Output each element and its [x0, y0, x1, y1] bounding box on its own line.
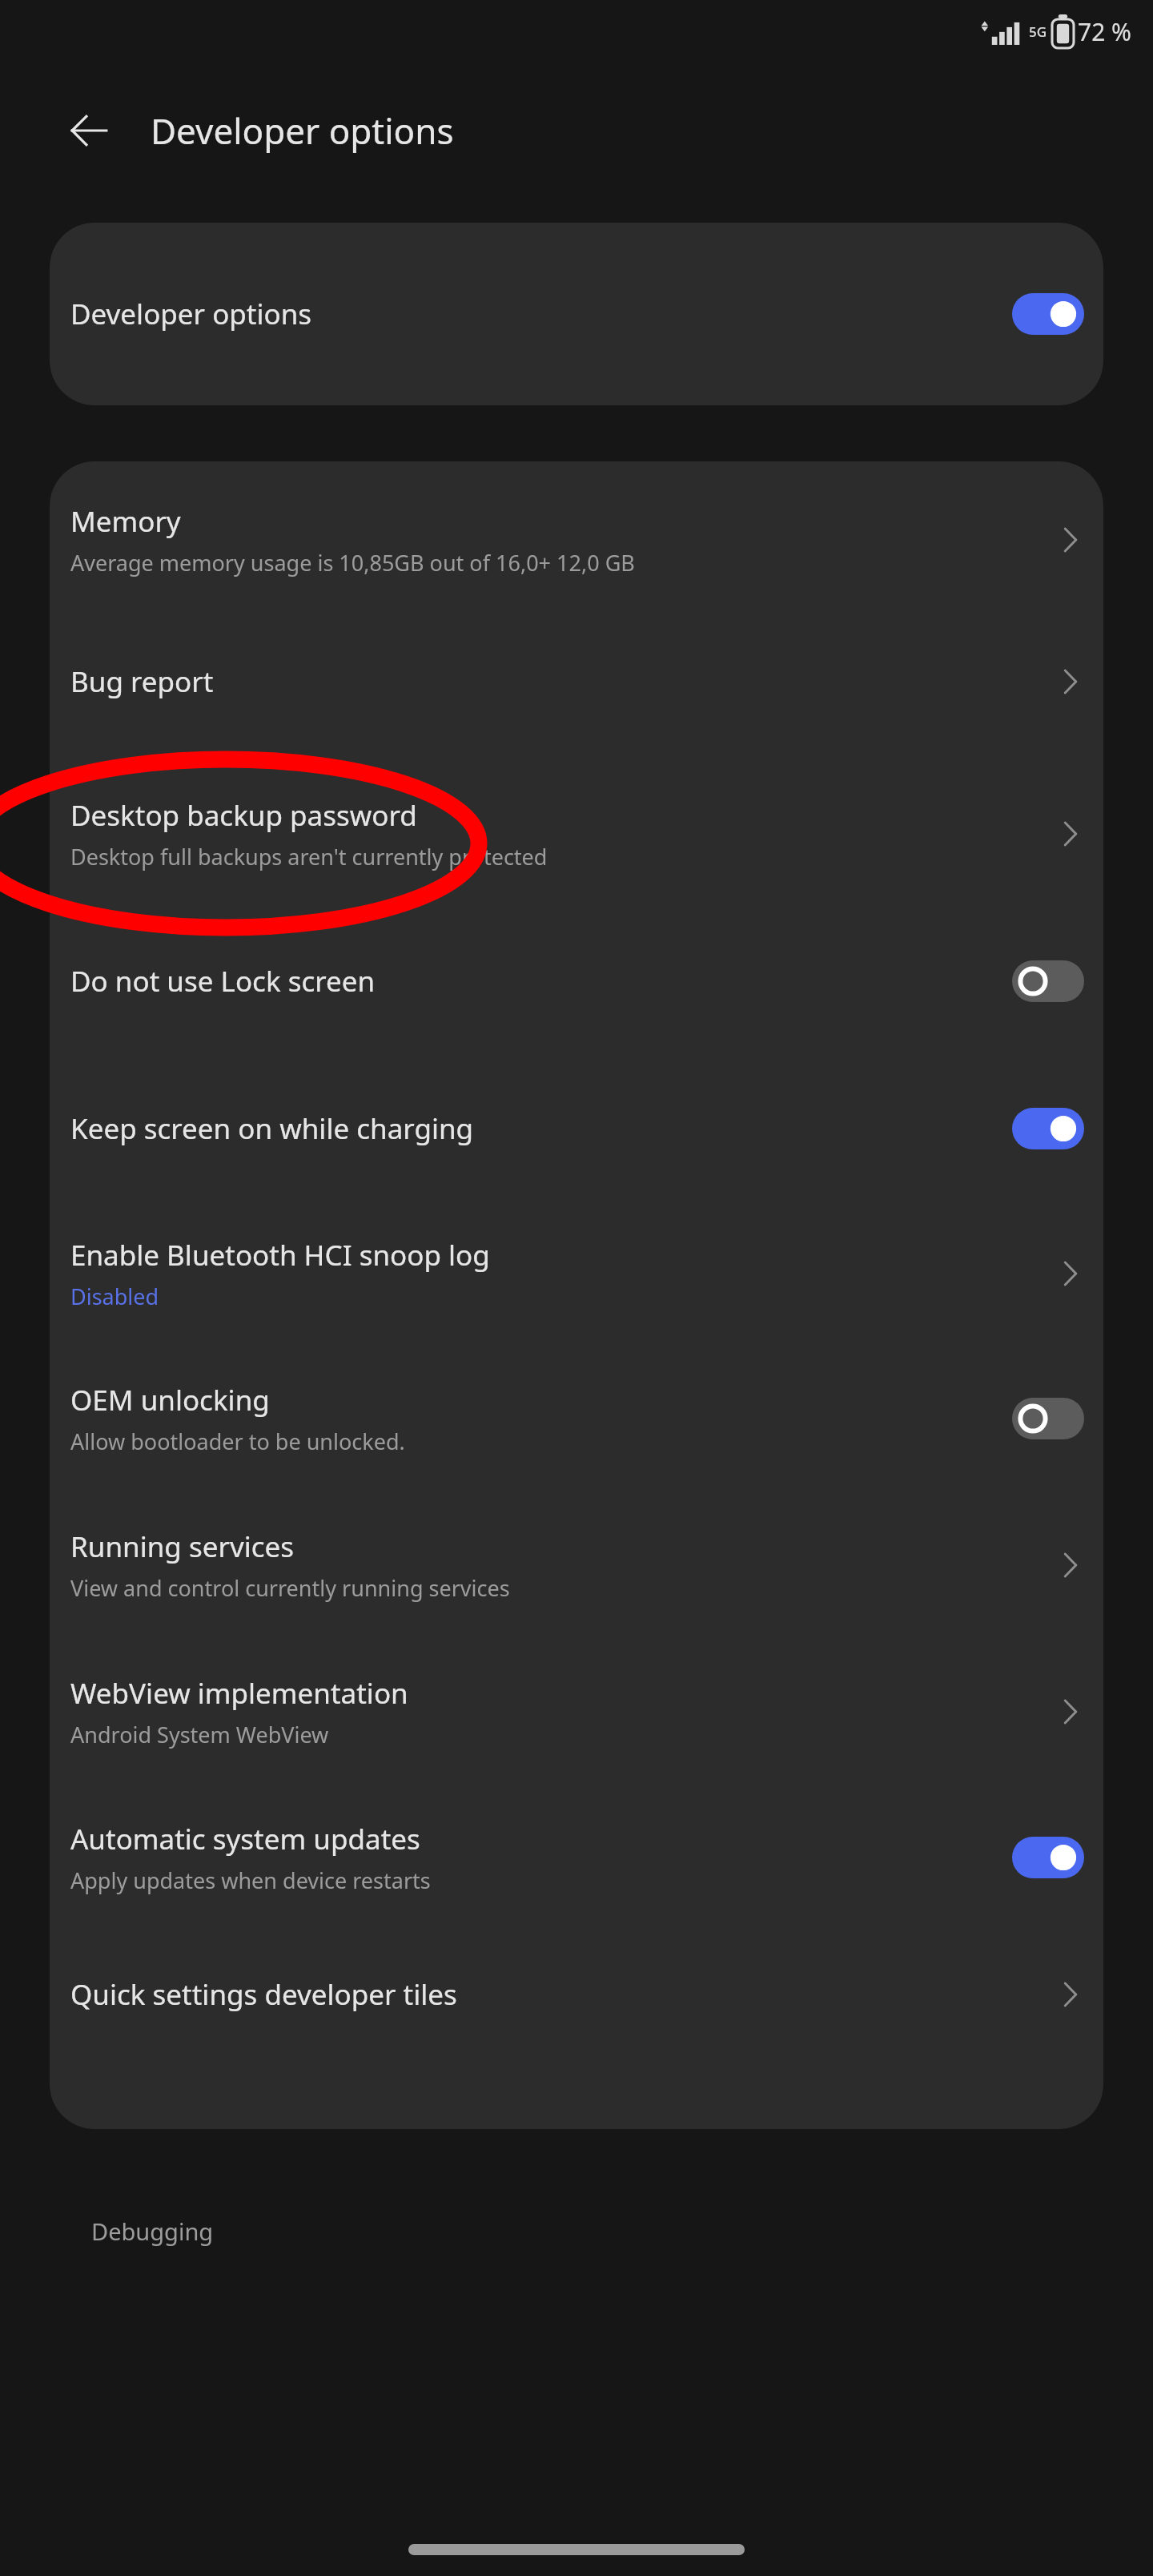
- other: WebView implementation: [1057, 1690, 1084, 1733]
- button[interactable]: Developer options: [50, 223, 1103, 405]
- staticText: Desktop backup password: [70, 796, 417, 835]
- other: Quick settings developer tiles: [1057, 1973, 1084, 2016]
- staticText: Desktop full backups aren't currently pr…: [70, 842, 548, 871]
- staticText: Do not use Lock screen: [70, 962, 376, 1000]
- staticText: Disabled: [70, 1282, 159, 1311]
- button[interactable]: Do not use Lock screen: [50, 907, 1103, 1056]
- staticText: Debugging: [91, 2216, 214, 2247]
- other: Desktop backup password: [1057, 812, 1084, 855]
- staticText: 5G: [1029, 22, 1047, 41]
- other: Do not use Lock screen: [1012, 960, 1084, 1002]
- staticText: Developer options: [151, 107, 454, 155]
- staticText: Average memory usage is 10,85GB out of 1…: [70, 548, 635, 578]
- staticText: Apply updates when device restarts: [70, 1866, 431, 1895]
- staticText: Android System WebView: [70, 1720, 329, 1749]
- other: OEM unlocking: [1012, 1398, 1084, 1439]
- staticText: OEM unlocking: [70, 1381, 270, 1419]
- button[interactable]: Quick settings developer tiles: [50, 1930, 1103, 2059]
- other: Bug report: [1057, 660, 1084, 703]
- staticText: WebView implementation: [70, 1674, 408, 1713]
- other: Memory: [1057, 518, 1084, 561]
- button[interactable]: Memory: [50, 477, 1103, 602]
- other: Running services: [1057, 1544, 1084, 1587]
- button[interactable]: Keep screen on while charging: [50, 1056, 1103, 1201]
- button[interactable]: Running services: [50, 1491, 1103, 1639]
- staticText: Developer options: [70, 295, 312, 333]
- staticText: View and control currently running servi…: [70, 1573, 510, 1603]
- button[interactable]: Navigate up: [50, 91, 128, 170]
- button[interactable]: Desktop backup password: [50, 761, 1103, 907]
- staticText: Keep screen on while charging: [70, 1109, 474, 1148]
- staticText: Enable Bluetooth HCI snoop log: [70, 1236, 490, 1274]
- button[interactable]: OEM unlocking: [50, 1346, 1103, 1491]
- staticText: Memory: [70, 502, 181, 541]
- button[interactable]: Bug report: [50, 602, 1103, 761]
- other: Keep screen on while charging: [1012, 1108, 1084, 1149]
- other: Developer options: [1012, 293, 1084, 335]
- button[interactable]: Enable Bluetooth HCI snoop log: [50, 1201, 1103, 1346]
- staticText: Automatic system updates: [70, 1820, 420, 1858]
- staticText: Quick settings developer tiles: [70, 1975, 457, 2014]
- other: Enable Bluetooth HCI snoop log: [1057, 1252, 1084, 1295]
- staticText: Allow bootloader to be unlocked.: [70, 1427, 405, 1456]
- button[interactable]: WebView implementation: [50, 1639, 1103, 1785]
- staticText: Bug report: [70, 662, 214, 701]
- button[interactable]: Automatic system updates: [50, 1785, 1103, 1930]
- other: Automatic system updates: [1012, 1837, 1084, 1878]
- staticText: Running services: [70, 1527, 295, 1566]
- staticText: 72 %: [1078, 15, 1132, 48]
